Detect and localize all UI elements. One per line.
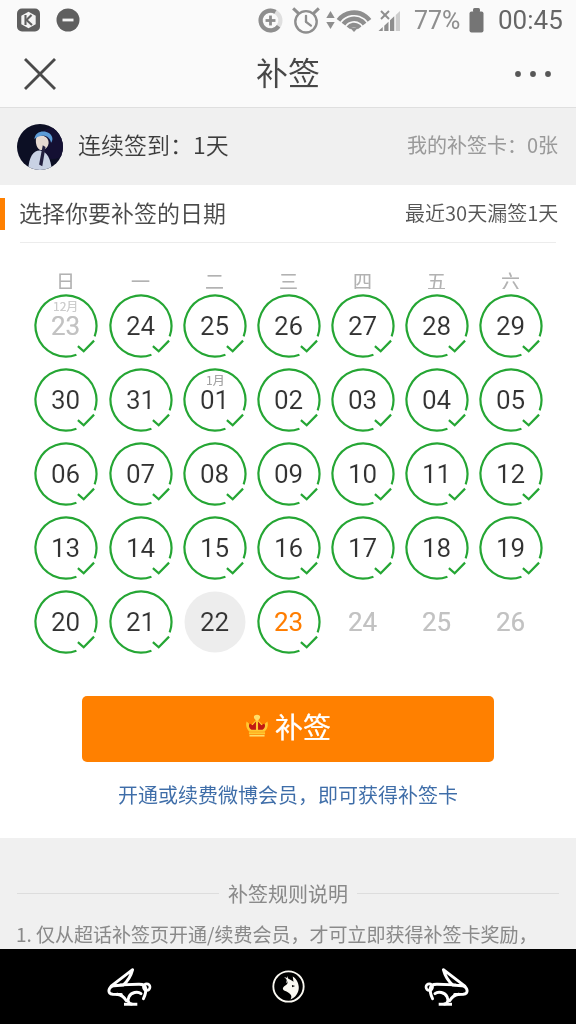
button[interactable]: 07 xyxy=(106,439,176,509)
staticText: 27 xyxy=(348,311,378,341)
button[interactable]: 04 xyxy=(402,365,472,435)
button[interactable]: 最近任务 xyxy=(396,949,500,1024)
staticText: 11 xyxy=(422,459,452,489)
button[interactable]: 26 xyxy=(476,587,546,657)
button[interactable]: 21 xyxy=(106,587,176,657)
staticText: 补签规则说明 xyxy=(228,879,348,908)
button[interactable]: 24 xyxy=(328,587,398,657)
button[interactable]: 08 xyxy=(180,439,250,509)
staticText: 12月 xyxy=(53,297,79,314)
staticText: 1月 xyxy=(206,371,225,388)
staticText: 24 xyxy=(348,607,378,637)
button[interactable]: 返回 xyxy=(76,949,180,1024)
staticText: 补签 xyxy=(275,706,332,747)
button[interactable]: 19 xyxy=(476,513,546,583)
staticText: 最近30天漏签1天 xyxy=(405,198,559,227)
staticText: 09 xyxy=(274,459,304,489)
button[interactable]: 01 xyxy=(180,365,250,435)
staticText: 29 xyxy=(496,311,526,341)
staticText: 00:45 xyxy=(498,5,563,35)
staticText: 31 xyxy=(126,385,156,415)
staticText: 30 xyxy=(51,385,81,415)
button[interactable]: 03 xyxy=(328,365,398,435)
button[interactable]: 连续签到：1天 xyxy=(0,108,576,185)
staticText: 14 xyxy=(126,533,156,563)
staticText: 四 xyxy=(353,267,373,289)
staticText: 22 xyxy=(200,607,230,637)
button[interactable]: 22 xyxy=(180,587,250,657)
staticText: 二 xyxy=(205,267,225,289)
staticText: 02 xyxy=(274,385,304,415)
button[interactable]: 23 xyxy=(254,587,324,657)
button[interactable]: 05 xyxy=(476,365,546,435)
button[interactable]: 28 xyxy=(402,291,472,361)
staticText: 开通或续费微博会员，即可获得补签卡 xyxy=(0,780,576,809)
staticText: 连续签到：1天 xyxy=(78,127,229,160)
button[interactable]: 20 xyxy=(31,587,101,657)
staticText: 04 xyxy=(422,385,452,415)
button[interactable]: 补签 xyxy=(82,696,494,762)
button[interactable]: 关闭 xyxy=(12,46,68,102)
button[interactable]: 13 xyxy=(31,513,101,583)
staticText: 06 xyxy=(51,459,81,489)
staticText: 17 xyxy=(348,533,378,563)
button[interactable]: 17 xyxy=(328,513,398,583)
staticText: 五 xyxy=(427,267,447,289)
staticText: 日 xyxy=(56,267,76,289)
staticText: 补签 xyxy=(256,48,321,94)
button[interactable]: 16 xyxy=(254,513,324,583)
button[interactable]: 24 xyxy=(106,291,176,361)
staticText: 18 xyxy=(422,533,452,563)
button[interactable]: 14 xyxy=(106,513,176,583)
button[interactable]: 12 xyxy=(476,439,546,509)
staticText: 13 xyxy=(51,533,81,563)
staticText: 05 xyxy=(496,385,526,415)
button[interactable]: 18 xyxy=(402,513,472,583)
staticText: 24 xyxy=(126,311,156,341)
staticText: 25 xyxy=(200,311,230,341)
staticText: 07 xyxy=(126,459,156,489)
staticText: 16 xyxy=(274,533,304,563)
staticText: 19 xyxy=(496,533,526,563)
staticText: 六 xyxy=(501,267,521,289)
staticText: 21 xyxy=(126,607,156,637)
button[interactable]: 02 xyxy=(254,365,324,435)
staticText: 28 xyxy=(422,311,452,341)
staticText: 1. 仅从超话补签页开通/续费会员，才可立即获得补签卡奖励， xyxy=(16,920,538,948)
button[interactable]: 30 xyxy=(31,365,101,435)
staticText: 23 xyxy=(274,607,304,637)
staticText: 20 xyxy=(51,607,81,637)
staticText: 08 xyxy=(200,459,230,489)
staticText: 23 xyxy=(51,311,81,341)
staticText: 01 xyxy=(200,385,230,415)
staticText: 三 xyxy=(279,267,299,289)
button[interactable]: 09 xyxy=(254,439,324,509)
button[interactable]: 主页 xyxy=(236,949,340,1024)
staticText: 26 xyxy=(274,311,304,341)
button[interactable]: 25 xyxy=(402,587,472,657)
button[interactable]: 06 xyxy=(31,439,101,509)
staticText: 12 xyxy=(496,459,526,489)
button[interactable]: 25 xyxy=(180,291,250,361)
button[interactable]: 15 xyxy=(180,513,250,583)
staticText: 77% xyxy=(414,6,461,35)
staticText: 15 xyxy=(200,533,230,563)
button[interactable]: 23 xyxy=(31,291,101,361)
button[interactable]: 27 xyxy=(328,291,398,361)
button[interactable]: 26 xyxy=(254,291,324,361)
button[interactable]: 11 xyxy=(402,439,472,509)
button[interactable]: 更多 xyxy=(505,46,561,102)
staticText: 26 xyxy=(496,607,526,637)
button[interactable]: 10 xyxy=(328,439,398,509)
staticText: 25 xyxy=(422,607,452,637)
staticText: 选择你要补签的日期 xyxy=(19,195,226,228)
staticText: 一 xyxy=(131,267,151,289)
button[interactable]: 29 xyxy=(476,291,546,361)
staticText: 我的补签卡：0张 xyxy=(407,130,559,159)
staticText: 03 xyxy=(348,385,378,415)
staticText: 10 xyxy=(348,459,378,489)
button[interactable]: 31 xyxy=(106,365,176,435)
